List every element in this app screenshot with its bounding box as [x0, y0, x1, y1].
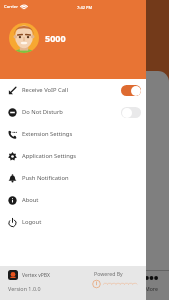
staticText: 7:42 PM: [77, 5, 93, 10]
staticText: Logout: [22, 218, 42, 226]
staticText: Vertex vPBX: [22, 272, 51, 279]
staticText: Do Not Disturb: [22, 108, 63, 116]
staticText: Powered By: [94, 270, 123, 277]
button[interactable]: Push Notification: [0, 167, 146, 189]
staticText: Carrier: [4, 4, 18, 10]
button[interactable]: Logout: [0, 211, 146, 233]
button[interactable]: Extension Settings: [0, 123, 146, 145]
button[interactable]: Do Not Disturb: [0, 101, 146, 123]
button[interactable]: Do Not Disturb: [121, 107, 141, 118]
staticText: Push Notification: [22, 174, 69, 182]
staticText: 5000: [45, 32, 66, 44]
button[interactable]: About: [0, 189, 146, 211]
staticText: Application Settings: [22, 152, 77, 160]
button[interactable]: Application Settings: [0, 145, 146, 167]
staticText: More: [145, 285, 158, 292]
button[interactable]: Receive VoIP Call: [0, 79, 146, 101]
staticText: Extension Settings: [22, 130, 73, 138]
button[interactable]: Receive VoIP Call: [121, 85, 141, 96]
staticText: About: [22, 196, 39, 204]
staticText: Receive VoIP Call: [22, 86, 68, 94]
button[interactable]: More: [134, 276, 169, 292]
staticText: Version 1.0.0: [8, 285, 41, 292]
